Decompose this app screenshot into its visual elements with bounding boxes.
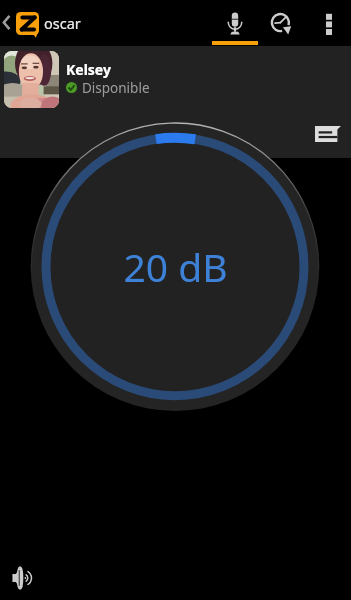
- button[interactable]: Microphone: [213, 2, 257, 44]
- button[interactable]: More options: [311, 2, 346, 44]
- staticText: Kelsey: [66, 60, 111, 79]
- other: Back: [3, 15, 10, 30]
- button[interactable]: Messages: [310, 116, 346, 152]
- button[interactable]: Kelsey: [0, 46, 351, 103]
- button[interactable]: History: [259, 2, 303, 44]
- staticText: oscar: [44, 13, 81, 33]
- staticText: 20 dB: [0, 240, 351, 293]
- staticText: Disponible: [82, 79, 150, 97]
- button[interactable]: Back: [0, 1, 87, 46]
- button[interactable]: Speaker volume: [2, 557, 44, 598]
